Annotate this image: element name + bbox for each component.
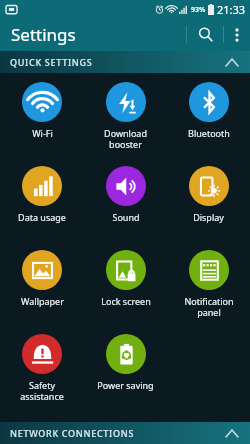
button[interactable]: Download booster [84, 76, 167, 160]
button[interactable]: Data usage [0, 160, 84, 244]
staticText: Sound [112, 211, 140, 223]
staticText: Display [193, 211, 224, 223]
button[interactable]: Sound [84, 160, 167, 244]
staticText: 93% [191, 5, 206, 15]
staticText: 21:33 [217, 2, 246, 17]
staticText: Wi-Fi [32, 127, 53, 139]
button[interactable]: Display [167, 160, 250, 244]
staticText: Settings [11, 23, 76, 46]
button[interactable]: Wallpaper [0, 244, 84, 328]
button[interactable]: Wi-Fi [0, 76, 84, 160]
button[interactable]: QUICK SETTINGS [0, 51, 250, 73]
staticText: Lock screen [101, 295, 151, 307]
button[interactable]: Safety assistance [0, 328, 84, 412]
button[interactable]: Notification panel [167, 244, 250, 328]
button[interactable]: Bluetooth [167, 76, 250, 160]
staticText: Download booster [104, 127, 147, 150]
staticText: NETWORK CONNECTIONS [10, 427, 135, 439]
staticText: Safety assistance [20, 379, 64, 402]
button[interactable]: More options [224, 18, 250, 51]
button[interactable]: Lock screen [84, 244, 167, 328]
staticText: Bluetooth [188, 127, 230, 139]
staticText: Wallpaper [21, 295, 64, 307]
staticText: Power saving [97, 379, 154, 391]
staticText: Notification panel [184, 295, 234, 318]
staticText: Data usage [18, 211, 66, 223]
button[interactable]: Power saving [84, 328, 167, 412]
button[interactable]: NETWORK CONNECTIONS [0, 422, 250, 444]
button[interactable]: Search [187, 18, 223, 51]
staticText: QUICK SETTINGS [10, 56, 93, 68]
